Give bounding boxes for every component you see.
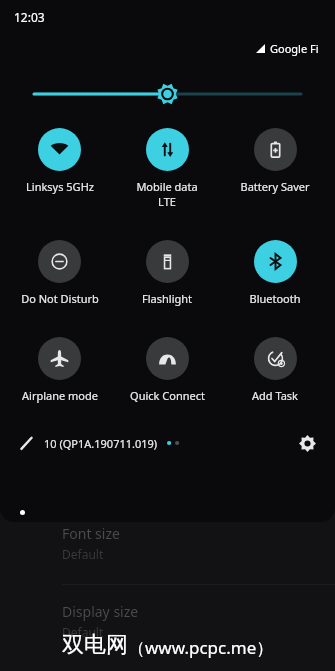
button[interactable]: Mobile data: [113, 128, 221, 209]
staticText: Default: [62, 624, 104, 640]
staticText: Display size: [62, 602, 139, 621]
button[interactable]: Flashlight: [113, 240, 221, 306]
staticText: 12:03: [14, 9, 45, 25]
button[interactable]: Quick Connect: [113, 337, 221, 403]
staticText: Add Task: [252, 388, 298, 403]
staticText: Default: [62, 546, 104, 562]
button[interactable]: Edit tiles: [14, 431, 38, 455]
staticText: LTE: [158, 194, 176, 209]
staticText: Battery Saver: [240, 179, 310, 194]
button[interactable]: Add Task: [221, 337, 329, 403]
staticText: Flashlight: [142, 291, 192, 306]
button[interactable]: Brightness: [34, 82, 301, 106]
button[interactable]: Do Not Disturb: [6, 240, 113, 306]
button[interactable]: Linksys 5GHz: [6, 128, 113, 194]
staticText: （www.pcpc.me）: [128, 636, 274, 659]
staticText: 10 (QP1A.190711.019): [44, 436, 158, 451]
button[interactable]: Airplane mode: [6, 337, 113, 403]
staticText: Linksys 5GHz: [26, 179, 94, 194]
staticText: Bluetooth: [249, 291, 301, 306]
staticText: 双电网: [62, 631, 128, 659]
staticText: Google Fi: [270, 41, 319, 56]
staticText: Airplane mode: [22, 388, 98, 403]
staticText: Quick Connect: [130, 388, 205, 403]
button[interactable]: Battery Saver: [221, 128, 329, 194]
staticText: Mobile data: [136, 179, 198, 194]
button[interactable]: Bluetooth: [221, 240, 329, 306]
button[interactable]: Settings: [293, 429, 321, 457]
staticText: Font size: [62, 524, 120, 543]
staticText: Do Not Disturb: [21, 291, 99, 306]
